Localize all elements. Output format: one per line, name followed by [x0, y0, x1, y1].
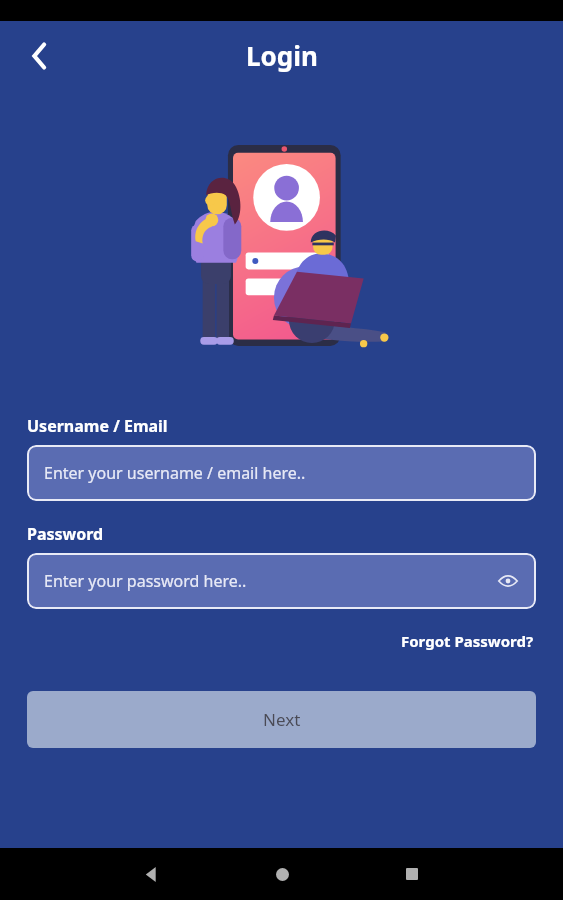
staticText: Next [263, 708, 301, 731]
staticText: Password [27, 523, 104, 545]
staticText: Username / Email [27, 415, 168, 437]
button[interactable]: Home [262, 854, 302, 894]
staticText: Enter your username / email here.. [44, 462, 306, 484]
staticText: Enter your password here.. [44, 570, 247, 592]
button[interactable]: Recents [392, 854, 432, 894]
staticText: Login [246, 38, 318, 73]
button[interactable]: Show password [492, 565, 524, 597]
staticText: Forgot Password? [401, 631, 534, 651]
button[interactable]: Enter your username / email here.. [27, 445, 536, 501]
button[interactable]: Back [131, 854, 171, 894]
button[interactable]: Back [18, 34, 62, 78]
button[interactable]: Enter your password here.. [27, 553, 536, 609]
button[interactable]: Forgot Password? [399, 627, 536, 655]
button[interactable]: Next [27, 691, 536, 748]
